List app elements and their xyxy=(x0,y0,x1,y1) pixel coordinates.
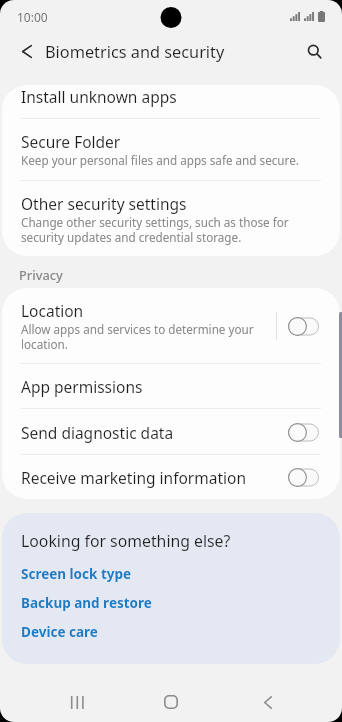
staticText: Send diagnostic data xyxy=(21,422,174,443)
staticText: Location xyxy=(21,300,84,321)
button[interactable]: Other security settings xyxy=(2,181,340,245)
button[interactable]: Back xyxy=(240,679,296,722)
button[interactable]: Location toggle xyxy=(288,317,319,336)
staticText: Allow apps and services to determine you… xyxy=(21,321,254,352)
staticText: Backup and restore xyxy=(21,594,152,612)
staticText: App permissions xyxy=(21,376,143,397)
button[interactable]: App permissions xyxy=(2,364,340,409)
button[interactable]: Backup and restore xyxy=(21,594,152,612)
staticText: Secure Folder xyxy=(21,131,121,152)
staticText: 10:00 xyxy=(17,9,48,25)
button[interactable]: Send diagnostic data xyxy=(2,409,277,455)
staticText: Change other security settings, such as … xyxy=(21,214,289,245)
button[interactable]: Receive marketing information toggle xyxy=(288,468,319,487)
staticText: Device care xyxy=(21,623,98,641)
button[interactable]: Receive marketing information xyxy=(2,455,277,499)
staticText: Screen lock type xyxy=(21,565,132,583)
button[interactable]: Navigate up xyxy=(0,29,48,74)
staticText: Keep your personal files and apps safe a… xyxy=(21,152,299,168)
staticText: Install unknown apps xyxy=(21,86,177,107)
staticText: Looking for something else? xyxy=(21,530,231,552)
button[interactable]: Location xyxy=(2,288,276,364)
button[interactable]: Home xyxy=(143,679,199,722)
button[interactable]: Screen lock type xyxy=(21,565,132,583)
button[interactable]: Install unknown apps xyxy=(2,85,340,119)
staticText: Privacy xyxy=(19,266,63,283)
button[interactable]: Recent apps xyxy=(48,679,104,722)
staticText: Receive marketing information xyxy=(21,467,246,488)
button[interactable]: Secure Folder xyxy=(2,119,340,181)
button[interactable]: Device care xyxy=(21,623,98,641)
staticText: Other security settings xyxy=(21,193,187,214)
button[interactable]: Send diagnostic data toggle xyxy=(288,423,319,442)
button[interactable]: Search xyxy=(298,29,342,74)
staticText: Biometrics and security xyxy=(45,41,225,63)
